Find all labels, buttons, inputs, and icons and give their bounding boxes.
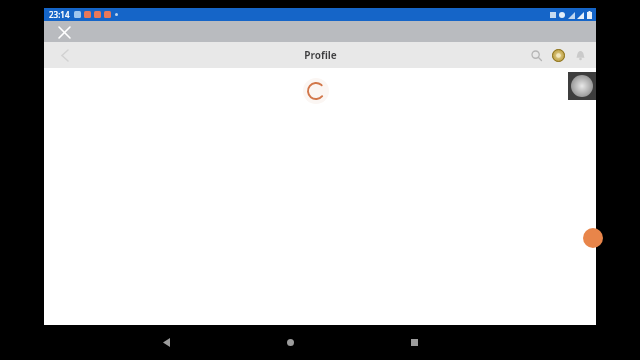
button[interactable]: Notifications — [570, 45, 590, 65]
button[interactable]: Action — [583, 228, 603, 248]
staticText: 23:14 — [49, 9, 70, 20]
staticText: Profile — [304, 48, 337, 62]
button[interactable]: Rewards — [548, 45, 568, 65]
button[interactable]: Close — [54, 22, 74, 42]
button[interactable]: Recent apps — [402, 330, 426, 354]
button[interactable]: Back — [54, 44, 76, 66]
button[interactable]: Search — [526, 45, 546, 65]
button[interactable]: Avatar — [568, 72, 596, 100]
button[interactable]: Home — [278, 330, 302, 354]
button[interactable]: Back — [154, 330, 178, 354]
